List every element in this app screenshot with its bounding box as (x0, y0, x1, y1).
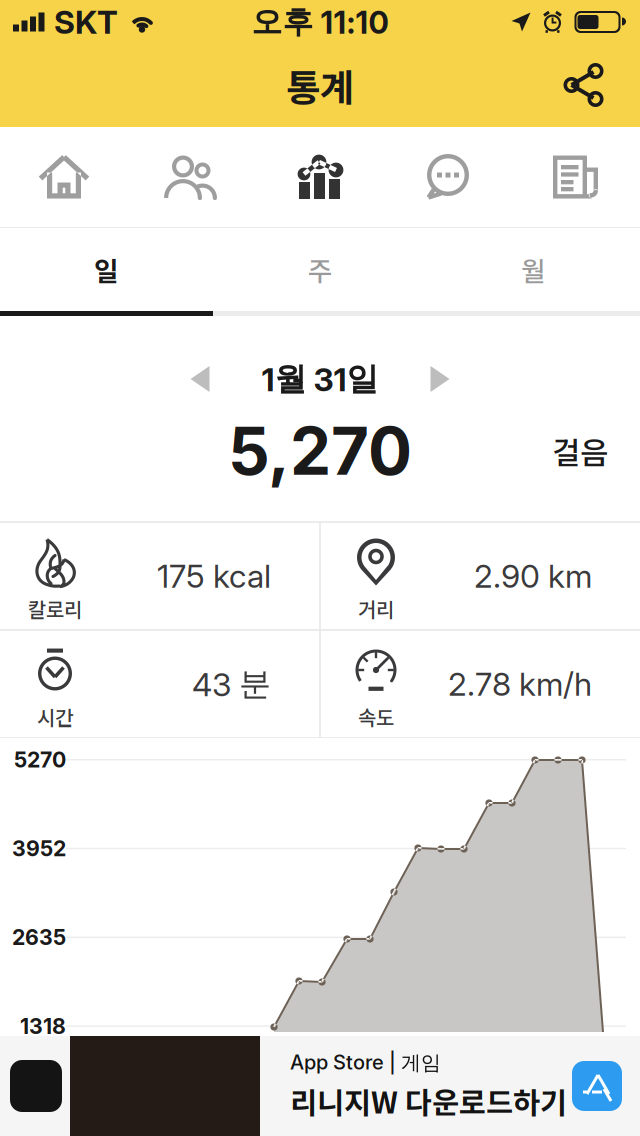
button[interactable]: 공유 (546, 47, 622, 123)
staticText: 5270 (14, 747, 66, 773)
button[interactable]: 통계 (256, 127, 384, 227)
button[interactable]: 채팅 (384, 127, 512, 227)
staticText: 오후 11:10 (251, 3, 388, 41)
button[interactable]: 이전 날 (173, 356, 227, 402)
button[interactable]: 소식 (512, 127, 640, 227)
staticText: SKT (54, 3, 118, 41)
staticText: 3952 (12, 836, 66, 861)
staticText: 1318 (20, 1013, 66, 1039)
button[interactable]: App Store | 게임 (0, 1036, 640, 1136)
button[interactable]: 일 (0, 228, 213, 311)
staticText: 월 (521, 250, 546, 289)
staticText: 2.78 km/h (448, 665, 592, 703)
staticText: 시간 (37, 702, 73, 731)
button[interactable]: 다음 날 (413, 356, 467, 402)
staticText: 2.90 km (474, 557, 592, 595)
staticText: 1월 31일 (261, 359, 378, 399)
staticText: 일 (94, 250, 119, 289)
button[interactable]: 친구 (128, 127, 256, 227)
staticText: 2635 (12, 924, 66, 950)
staticText: 5,270 (228, 411, 412, 490)
staticText: 리니지W 다운로드하기 (290, 1079, 567, 1122)
staticText: 거리 (358, 594, 394, 623)
staticText: 175 kcal (157, 557, 271, 595)
button[interactable]: 홈 (0, 127, 128, 227)
button[interactable]: 주 (213, 228, 427, 311)
staticText: 칼로리 (28, 594, 82, 623)
staticText: 주 (307, 250, 332, 289)
staticText: 걸음 (552, 429, 608, 473)
staticText: 통계 (286, 58, 354, 113)
staticText: 43 분 (192, 664, 271, 704)
staticText: 속도 (358, 702, 394, 731)
staticText: App Store | 게임 (290, 1050, 441, 1075)
button[interactable]: 월 (427, 228, 640, 311)
